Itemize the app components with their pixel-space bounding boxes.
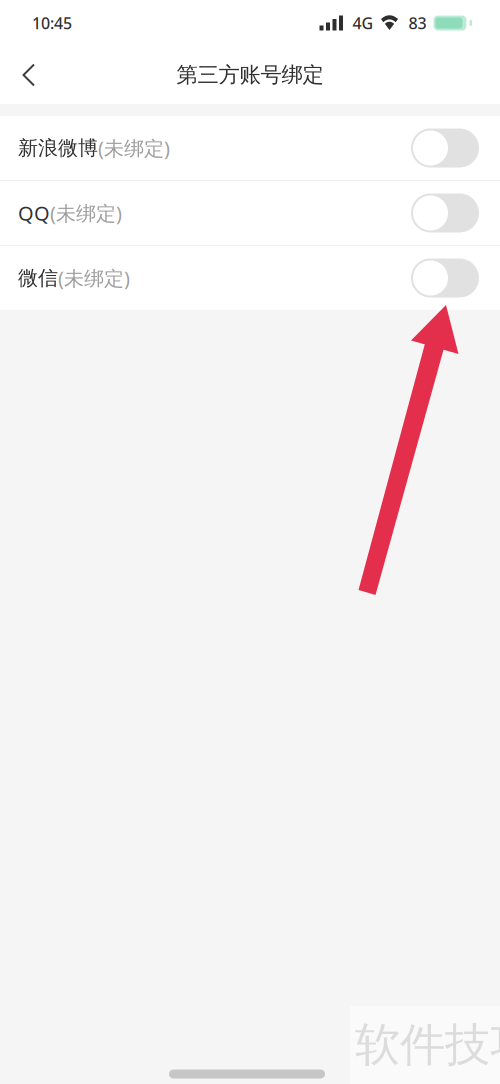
button[interactable]: QQ (0, 181, 500, 245)
staticText: 83 (408, 12, 426, 34)
staticText: 10:45 (32, 12, 72, 34)
button[interactable]: 微信 (0, 246, 500, 310)
button[interactable]: Back (0, 46, 60, 104)
staticText: 软件技巧 (355, 1017, 500, 1073)
staticText: 4G (352, 12, 373, 34)
staticText: (未绑定) (98, 135, 170, 161)
staticText: QQ (18, 200, 50, 226)
staticText: 微信 (18, 266, 58, 290)
staticText: 第三方账号绑定 (176, 62, 323, 88)
button[interactable]: QQ (411, 193, 479, 232)
button[interactable]: 新浪微博 (0, 116, 500, 180)
button[interactable]: 微信 (411, 258, 479, 297)
staticText: (未绑定) (50, 200, 122, 226)
staticText: (未绑定) (58, 265, 130, 291)
button[interactable]: 新浪微博 (411, 128, 479, 167)
staticText: 新浪微博 (18, 136, 98, 160)
